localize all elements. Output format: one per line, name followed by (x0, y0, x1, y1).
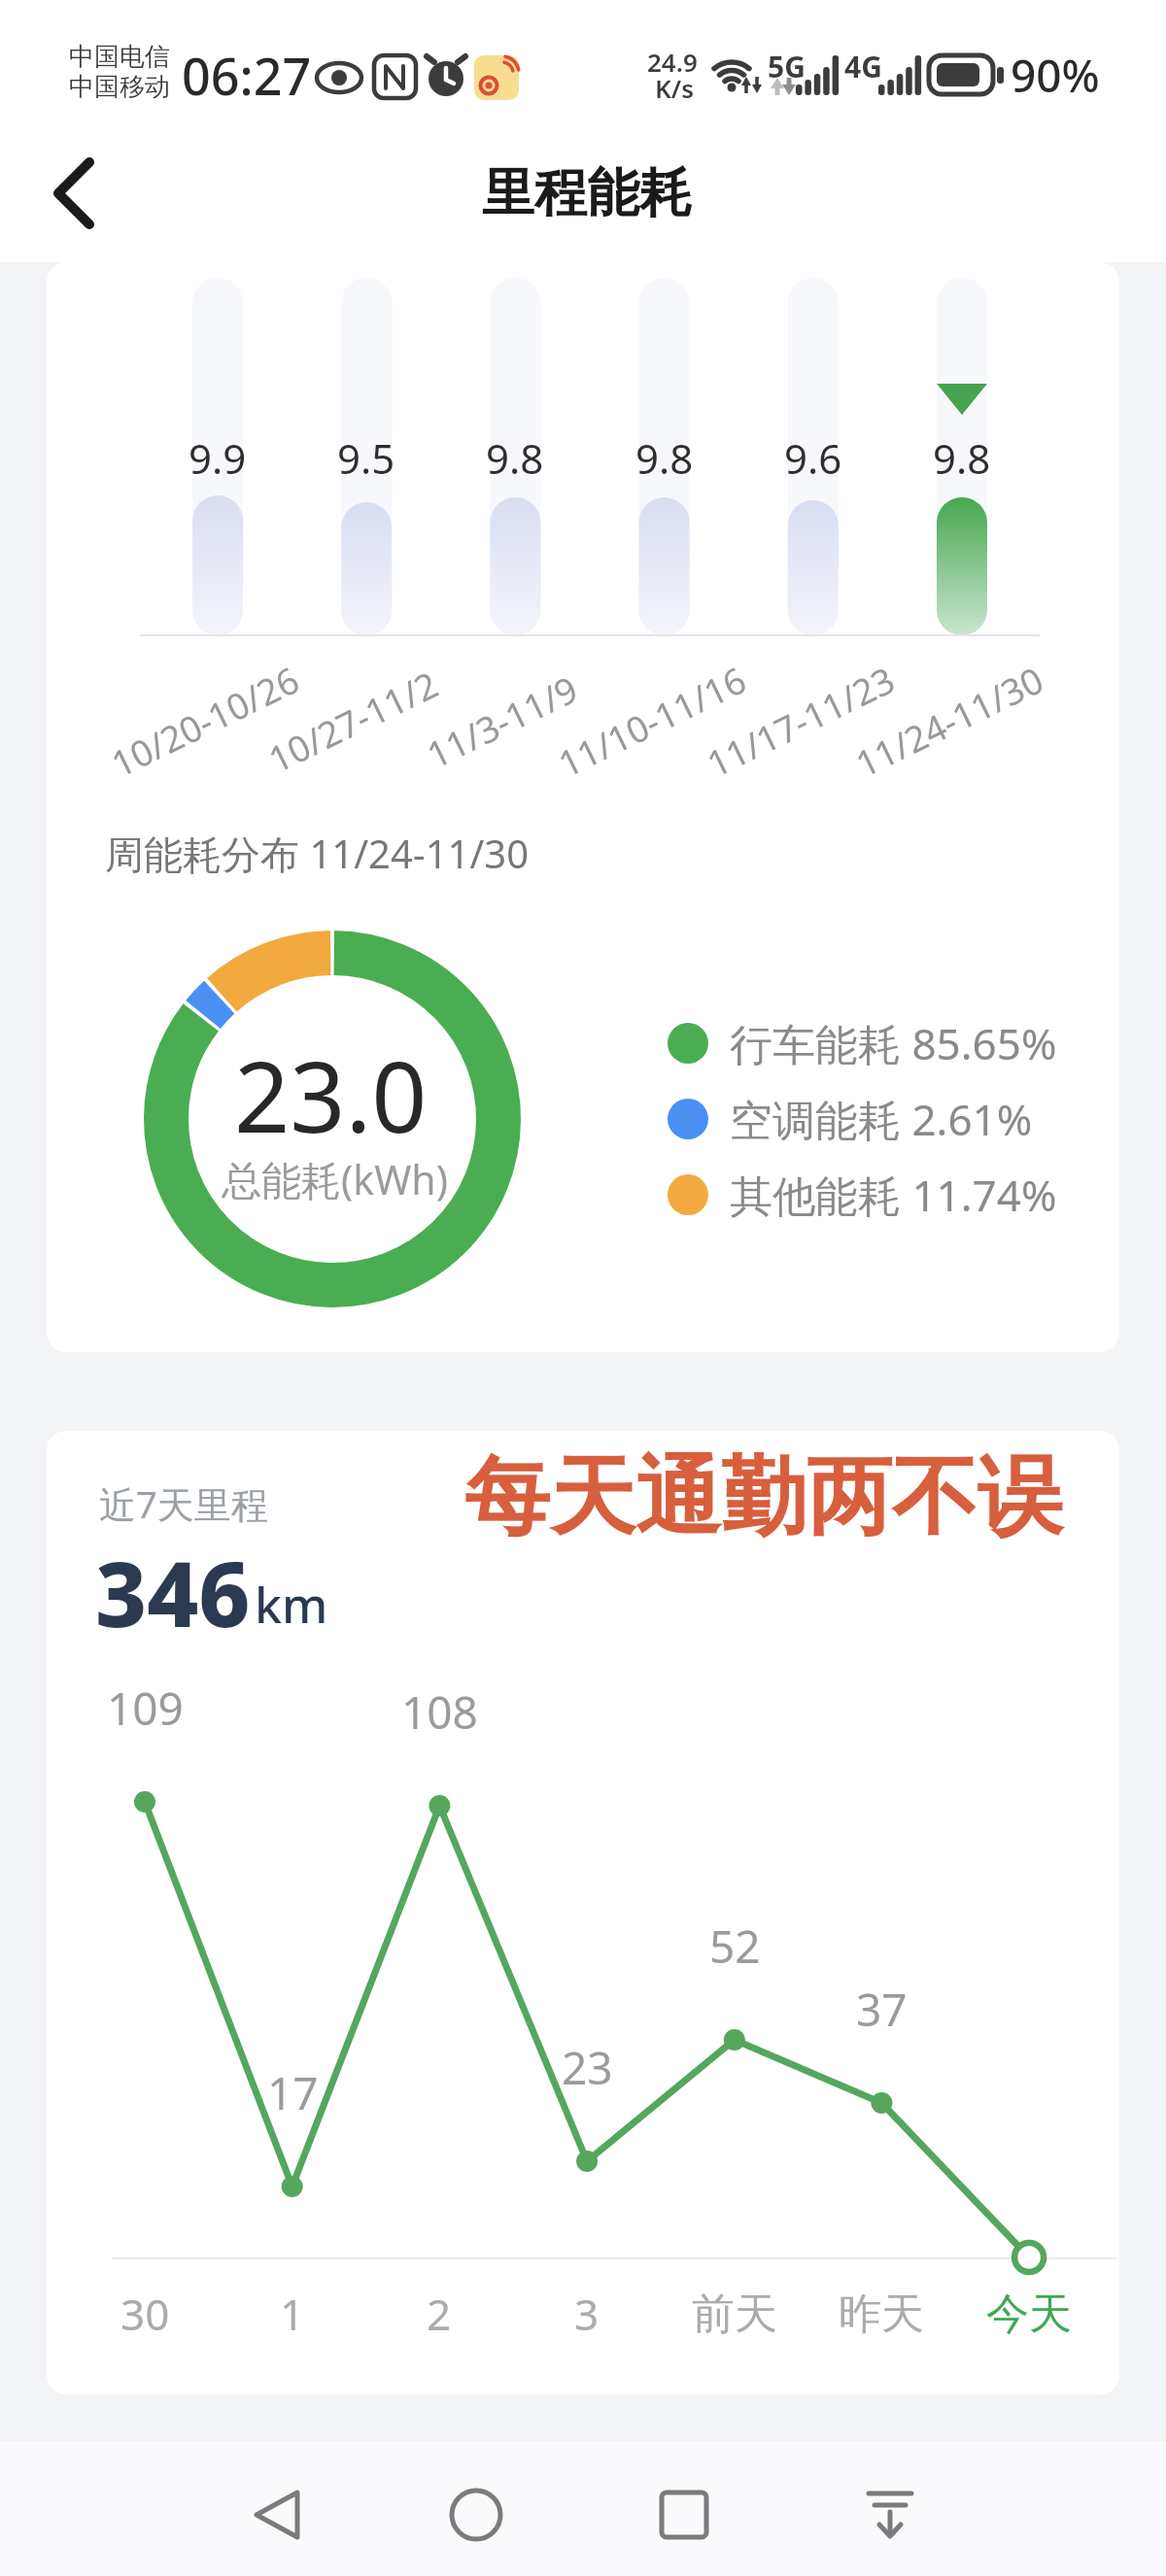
staticText: 9.8 (635, 430, 694, 486)
staticText: 90% (1011, 45, 1100, 106)
button[interactable] (428, 2466, 525, 2563)
staticText: 里程能耗 (482, 160, 692, 226)
staticText: 空调能耗 2.61% (730, 1090, 1033, 1148)
staticText: 9.5 (337, 430, 395, 486)
staticText: 10/27-11/2 (260, 659, 446, 783)
staticText: 9.8 (933, 430, 991, 486)
staticText: 前天 (692, 2288, 777, 2341)
staticText: 中国移动 (69, 71, 170, 103)
staticText: 108 (401, 1681, 478, 1743)
staticText: 11/17-11/23 (698, 654, 902, 787)
staticText: 中国电信 (69, 41, 170, 73)
staticText: 23.0 (234, 1029, 428, 1161)
staticText: 23 (562, 2037, 613, 2098)
button[interactable] (635, 2466, 733, 2563)
button[interactable] (841, 2466, 939, 2563)
staticText: 109 (107, 1678, 184, 1739)
staticText: 4G (844, 47, 882, 86)
staticText: 总能耗(kWh) (222, 1152, 448, 1206)
staticText: 今天 (986, 2288, 1072, 2341)
staticText: 行车能耗 85.65% (730, 1014, 1057, 1072)
staticText: 1 (280, 2285, 305, 2343)
staticText: 10/20-10/26 (103, 654, 306, 787)
staticText: 其他能耗 11.74% (730, 1166, 1057, 1224)
staticText: 11/24-11/30 (847, 654, 1051, 787)
staticText: 30 (120, 2285, 170, 2343)
staticText: km (255, 1572, 328, 1638)
staticText: 06:27 (182, 41, 312, 110)
staticText: 每天通勤两不误 (464, 1443, 1063, 1551)
staticText: 昨天 (839, 2288, 924, 2341)
staticText: 9.8 (486, 430, 544, 486)
staticText: 周能耗分布 11/24-11/30 (105, 827, 530, 880)
staticText: 11/10-11/16 (550, 654, 753, 787)
staticText: K/s (655, 71, 695, 105)
staticText: 11/3-11/9 (418, 663, 585, 778)
staticText: 346 (95, 1532, 251, 1653)
staticText: 9.9 (189, 430, 247, 486)
button[interactable] (29, 146, 126, 243)
staticText: 5G (768, 47, 806, 86)
staticText: 37 (856, 1979, 908, 2040)
staticText: 2 (427, 2285, 452, 2343)
staticText: 52 (709, 1915, 761, 1977)
staticText: 17 (267, 2062, 319, 2123)
staticText: 9.6 (784, 430, 842, 486)
button[interactable] (229, 2466, 326, 2563)
staticText: 3 (574, 2285, 600, 2343)
staticText: 24.9 (647, 45, 698, 79)
staticText: 近7天里程 (99, 1478, 268, 1529)
